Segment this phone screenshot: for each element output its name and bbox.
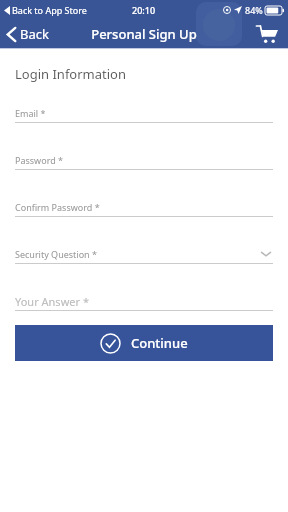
staticText: Password * — [15, 154, 64, 166]
staticText: 20:10 — [132, 4, 156, 16]
staticText: Security Question * — [15, 248, 97, 260]
button[interactable]: Security Question * — [15, 246, 273, 264]
staticText: Back to App Store — [12, 4, 87, 16]
button[interactable]: Your Answer * — [15, 293, 273, 311]
other: Open dropdown — [259, 249, 273, 259]
staticText: Personal Sign Up — [91, 25, 197, 43]
button[interactable]: Shopping cart — [246, 20, 288, 48]
button[interactable]: Continue — [15, 325, 273, 361]
staticText: 84% — [245, 4, 263, 16]
staticText: Continue — [131, 334, 188, 352]
staticText: Login Information — [15, 65, 126, 83]
button[interactable]: Confirm Password * — [15, 199, 273, 217]
staticText: Email * — [15, 107, 46, 119]
button[interactable]: Password * — [15, 152, 273, 170]
button[interactable]: Back — [7, 20, 49, 48]
staticText: Confirm Password * — [15, 201, 100, 213]
button[interactable]: Back to App Store — [4, 4, 87, 16]
staticText: Back — [20, 25, 49, 43]
staticText: Your Answer * — [15, 294, 89, 309]
button[interactable]: Email * — [15, 105, 273, 123]
